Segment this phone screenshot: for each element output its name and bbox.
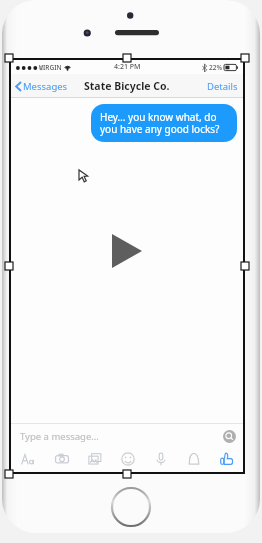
- button[interactable]: Stickers: [111, 448, 144, 470]
- button[interactable]: Voice: [144, 448, 177, 470]
- button[interactable]: Like: [210, 448, 243, 470]
- button[interactable]: Messages: [11, 77, 72, 96]
- staticText: Details: [207, 80, 238, 93]
- staticText: Hey… you know what, do you have any good…: [100, 110, 228, 136]
- staticText: Type a message…: [20, 430, 99, 443]
- button[interactable]: Games: [177, 448, 210, 470]
- button[interactable]: Text format: [11, 448, 45, 470]
- button[interactable]: Photos: [78, 448, 111, 470]
- button[interactable]: Home: [112, 488, 150, 526]
- button[interactable]: Search: [223, 430, 236, 443]
- staticText: 22%: [209, 63, 222, 72]
- staticText: VIRGIN: [39, 63, 62, 72]
- button[interactable]: Type a message…: [11, 424, 243, 448]
- staticText: State Bicycle Co.: [84, 79, 170, 93]
- button[interactable]: Camera: [45, 448, 78, 470]
- staticText: 4:21 PM: [114, 62, 141, 72]
- staticText: Messages: [23, 80, 68, 93]
- button[interactable]: Hey… you know what, do you have any good…: [91, 104, 237, 142]
- button[interactable]: Details: [202, 77, 243, 96]
